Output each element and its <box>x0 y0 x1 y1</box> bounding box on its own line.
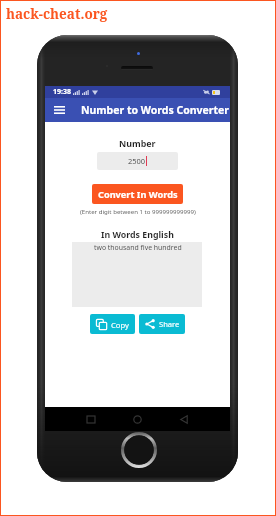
staticText: Copy <box>111 320 129 330</box>
staticText: hack-cheat.org <box>6 5 108 23</box>
staticText: Number to Words Converter <box>81 103 230 117</box>
staticText: 19:38 <box>53 87 71 97</box>
button[interactable]: Share <box>139 314 185 334</box>
button[interactable]: Copy <box>90 314 135 334</box>
staticText: In Words English <box>101 229 174 241</box>
button[interactable]: Recent apps <box>81 409 101 429</box>
staticText: Convert In Words <box>98 188 178 201</box>
staticText: Number <box>119 137 156 149</box>
button[interactable]: Home <box>127 409 147 429</box>
button[interactable]: 2500 <box>97 152 178 170</box>
staticText: 2500 <box>128 156 146 166</box>
button[interactable]: Back <box>174 409 194 429</box>
button[interactable]: Convert In Words <box>92 184 183 204</box>
staticText: two thousand five hundred <box>94 243 182 252</box>
staticText: Share <box>159 319 180 329</box>
button[interactable]: Open navigation menu <box>51 102 67 118</box>
staticText: (Enter digit between 1 to 999999999999) <box>80 207 196 215</box>
